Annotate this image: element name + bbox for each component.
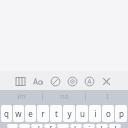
button[interactable]: g (57, 124, 69, 128)
button[interactable]: Highlight off (48, 74, 62, 88)
button[interactable]: a (7, 124, 18, 128)
staticText: d (35, 124, 40, 128)
staticText: i (94, 108, 97, 119)
button[interactable]: im (0, 90, 42, 104)
staticText: p (119, 108, 124, 119)
button[interactable]: Close (99, 74, 113, 88)
staticText: r (41, 108, 45, 119)
staticText: o (106, 108, 111, 119)
staticText: I (106, 92, 109, 102)
button[interactable]: h (70, 124, 82, 128)
staticText: w (15, 108, 22, 119)
button[interactable]: d (31, 124, 43, 128)
button[interactable]: p (115, 105, 127, 122)
staticText: no (60, 92, 69, 102)
button[interactable]: Insert (65, 74, 79, 88)
staticText: h (74, 124, 79, 128)
button[interactable]: j (83, 124, 95, 128)
button[interactable]: q (1, 105, 12, 122)
button[interactable]: u (76, 105, 88, 122)
button[interactable]: i (89, 105, 101, 122)
button[interactable]: no (43, 90, 85, 104)
staticText: f (49, 124, 52, 128)
staticText: l (114, 124, 117, 128)
staticText: im (17, 92, 26, 102)
button[interactable]: y (63, 105, 75, 122)
staticText: k (100, 124, 105, 128)
button[interactable]: r (37, 105, 49, 122)
staticText: q (4, 108, 9, 119)
button[interactable]: Annotate (82, 74, 96, 88)
button[interactable]: Layout columns (13, 74, 27, 88)
button[interactable]: f (44, 124, 56, 128)
button[interactable]: t (50, 105, 62, 122)
staticText: y (67, 108, 72, 119)
button[interactable]: k (96, 124, 108, 128)
button[interactable]: w (13, 105, 24, 122)
staticText: t (55, 108, 58, 119)
button[interactable]: Text formatting (31, 74, 45, 88)
button[interactable]: l (109, 124, 121, 128)
button[interactable]: s (19, 124, 30, 128)
button[interactable]: o (102, 105, 114, 122)
staticText: u (80, 108, 85, 119)
button[interactable]: e (25, 105, 36, 122)
staticText: e (28, 108, 33, 119)
staticText: j (88, 124, 91, 128)
